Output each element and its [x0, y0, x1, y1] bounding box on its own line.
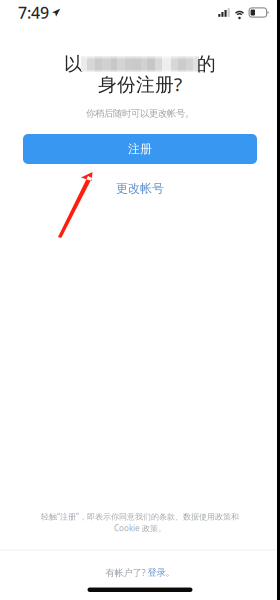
- staticText: Cookie 政策。: [114, 523, 166, 533]
- staticText: 身份注册?: [98, 72, 182, 96]
- staticText: 你稍后随时可以更改帐号。: [86, 108, 194, 119]
- staticText: 注册: [128, 142, 152, 156]
- staticText: 轻触“注册”，即表示你同意我们的条款、数据使用政策和: [41, 511, 239, 522]
- staticText: 7:49: [18, 2, 49, 23]
- staticText: 的: [197, 52, 216, 75]
- staticText: 有帐户了?: [105, 566, 145, 579]
- staticText: 以: [64, 52, 83, 75]
- button[interactable]: 有帐户了?: [0, 550, 280, 587]
- staticText: 更改帐号: [116, 181, 164, 196]
- button[interactable]: 更改帐号: [102, 178, 178, 199]
- staticText: 登录。: [147, 567, 174, 578]
- button[interactable]: 注册: [23, 134, 257, 164]
